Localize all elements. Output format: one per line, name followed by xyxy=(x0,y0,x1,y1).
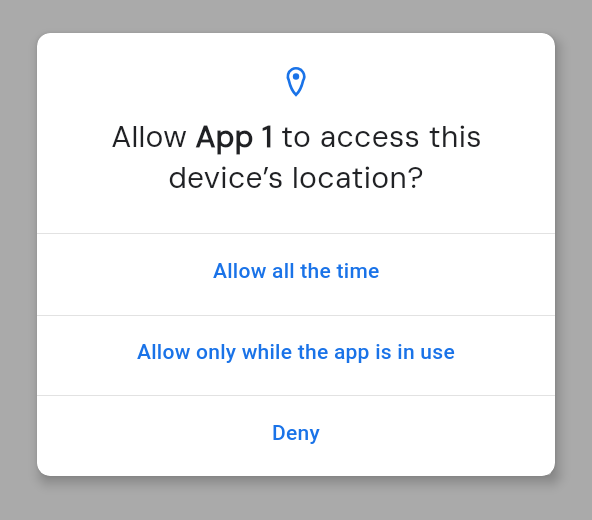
staticText: Allow all the time xyxy=(213,259,380,284)
button[interactable]: Allow only while the app is in use xyxy=(37,316,555,395)
staticText: Deny xyxy=(272,421,320,446)
staticText: device’s location? xyxy=(168,158,424,197)
staticText: Allow App 1 to access this xyxy=(111,117,482,156)
button[interactable]: Allow all the time xyxy=(37,234,555,315)
staticText: Allow only while the app is in use xyxy=(137,340,455,365)
button[interactable]: Deny xyxy=(37,396,555,476)
